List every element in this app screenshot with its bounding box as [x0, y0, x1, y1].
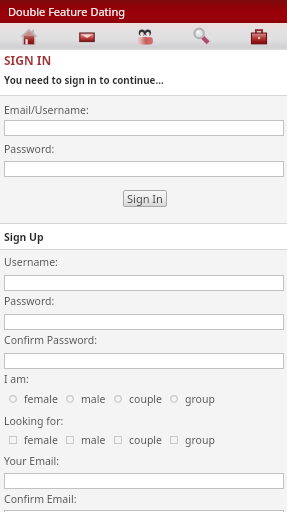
- button[interactable]: [4, 120, 284, 136]
- button[interactable]: group: [166, 433, 219, 447]
- button[interactable]: couple: [110, 433, 166, 447]
- staticText: Looking for:: [4, 414, 64, 428]
- staticText: group: [185, 392, 215, 406]
- staticText: Double Feature Dating: [8, 4, 125, 19]
- staticText: Confirm Password:: [4, 333, 97, 347]
- staticText: Confirm Email:: [4, 492, 77, 506]
- button[interactable]: [4, 510, 284, 512]
- staticText: group: [185, 433, 215, 447]
- button[interactable]: [4, 314, 284, 330]
- staticText: Your Email:: [4, 454, 60, 468]
- button[interactable]: Friends: [116, 23, 173, 50]
- staticText: Email/Username:: [4, 103, 89, 117]
- staticText: SIGN IN: [4, 52, 52, 68]
- staticText: Password:: [4, 142, 55, 156]
- button[interactable]: Home: [0, 23, 58, 50]
- staticText: couple: [129, 392, 162, 406]
- staticText: Sign In: [127, 191, 163, 206]
- staticText: male: [81, 392, 106, 406]
- button[interactable]: group: [166, 392, 219, 406]
- button[interactable]: Sign In: [123, 190, 167, 207]
- staticText: Username:: [4, 255, 58, 269]
- button[interactable]: [4, 275, 284, 291]
- staticText: You need to sign in to continue...: [4, 74, 164, 87]
- staticText: male: [81, 433, 106, 447]
- button[interactable]: female: [5, 392, 62, 406]
- staticText: Sign Up: [4, 230, 44, 244]
- staticText: I am:: [4, 372, 29, 386]
- button[interactable]: Messages: [58, 23, 116, 50]
- staticText: couple: [129, 433, 162, 447]
- button[interactable]: couple: [110, 392, 166, 406]
- staticText: female: [24, 392, 58, 406]
- button[interactable]: male: [62, 392, 110, 406]
- button[interactable]: [4, 353, 284, 369]
- button[interactable]: Search: [173, 23, 230, 50]
- button[interactable]: [4, 473, 284, 489]
- button[interactable]: [4, 161, 284, 177]
- staticText: Password:: [4, 294, 55, 308]
- button[interactable]: female: [5, 433, 62, 447]
- staticText: female: [24, 433, 58, 447]
- button[interactable]: Account: [230, 23, 287, 50]
- button[interactable]: male: [62, 433, 110, 447]
